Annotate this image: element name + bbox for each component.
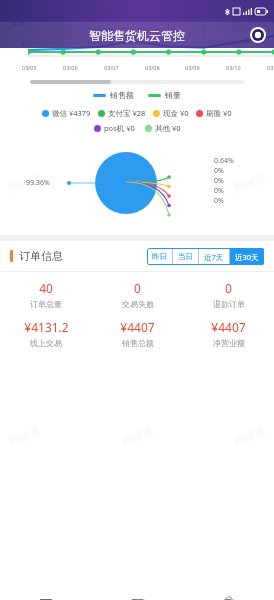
staticText: 03/06	[63, 64, 78, 71]
staticText: ¥4407	[211, 319, 246, 335]
button[interactable]: 近30天	[230, 248, 264, 265]
staticText: 退款订单	[213, 299, 245, 309]
staticText: 0.64%	[214, 156, 234, 166]
staticText: 净营业额	[213, 338, 245, 348]
staticText: 商铺通	[120, 171, 155, 195]
staticText: 其他 ¥0	[155, 123, 181, 133]
staticText: 支付宝 ¥28	[108, 108, 146, 118]
staticText: 0	[134, 280, 141, 296]
staticText: 03/09	[185, 64, 200, 71]
staticText: 订单总量	[30, 299, 62, 309]
staticText: 0%	[214, 196, 224, 206]
staticText: 0%	[214, 176, 224, 186]
staticText: 销量	[165, 90, 181, 100]
button[interactable]: ¥4407	[183, 319, 274, 348]
button[interactable]: 当日	[173, 248, 198, 265]
staticText: 0	[21, 39, 25, 48]
staticText: 03/07	[104, 64, 119, 71]
staticText: 40	[39, 280, 53, 296]
staticText: 0	[225, 280, 232, 296]
staticText: 商铺通	[7, 171, 42, 195]
button[interactable]: ¥4407	[92, 319, 183, 348]
staticText: 昨日	[152, 252, 167, 261]
staticText: 销售额	[110, 90, 134, 100]
staticText: 03/10	[226, 64, 241, 71]
staticText: 交易失败	[122, 299, 154, 309]
button[interactable]: 40	[0, 280, 92, 309]
staticText: 420	[13, 19, 25, 28]
staticText: ¥4407	[120, 319, 155, 335]
button[interactable]: ¥4131.2	[0, 319, 92, 348]
staticText: 0%	[214, 166, 224, 176]
staticText: 近30天	[235, 252, 259, 262]
staticText: 03/05	[22, 64, 37, 71]
staticText: 03/08	[145, 64, 160, 71]
staticText: 线上交易	[30, 338, 62, 348]
button[interactable]: 0	[183, 280, 274, 309]
button[interactable]: 扫一扫	[250, 27, 266, 43]
staticText: 刷脸 ¥0	[206, 108, 232, 118]
staticText: ¥4131.2	[24, 319, 69, 335]
staticText: 99.36%	[26, 178, 50, 188]
staticText: 销售总额	[122, 338, 154, 348]
button[interactable]: 近7天	[199, 248, 229, 265]
staticText: 0%	[214, 186, 224, 196]
staticText: 03	[267, 64, 274, 71]
staticText: 近7天	[204, 252, 224, 262]
staticText: 当日	[178, 252, 193, 261]
staticText: 订单信息	[19, 249, 63, 263]
staticText: 智能售货机云管控	[89, 28, 185, 43]
staticText: 现金 ¥0	[163, 108, 189, 118]
staticText: 微信 ¥4379	[52, 108, 91, 118]
button[interactable]: 0	[92, 280, 183, 309]
button[interactable]: 昨日	[147, 248, 172, 265]
staticText: pos机 ¥0	[104, 123, 135, 133]
